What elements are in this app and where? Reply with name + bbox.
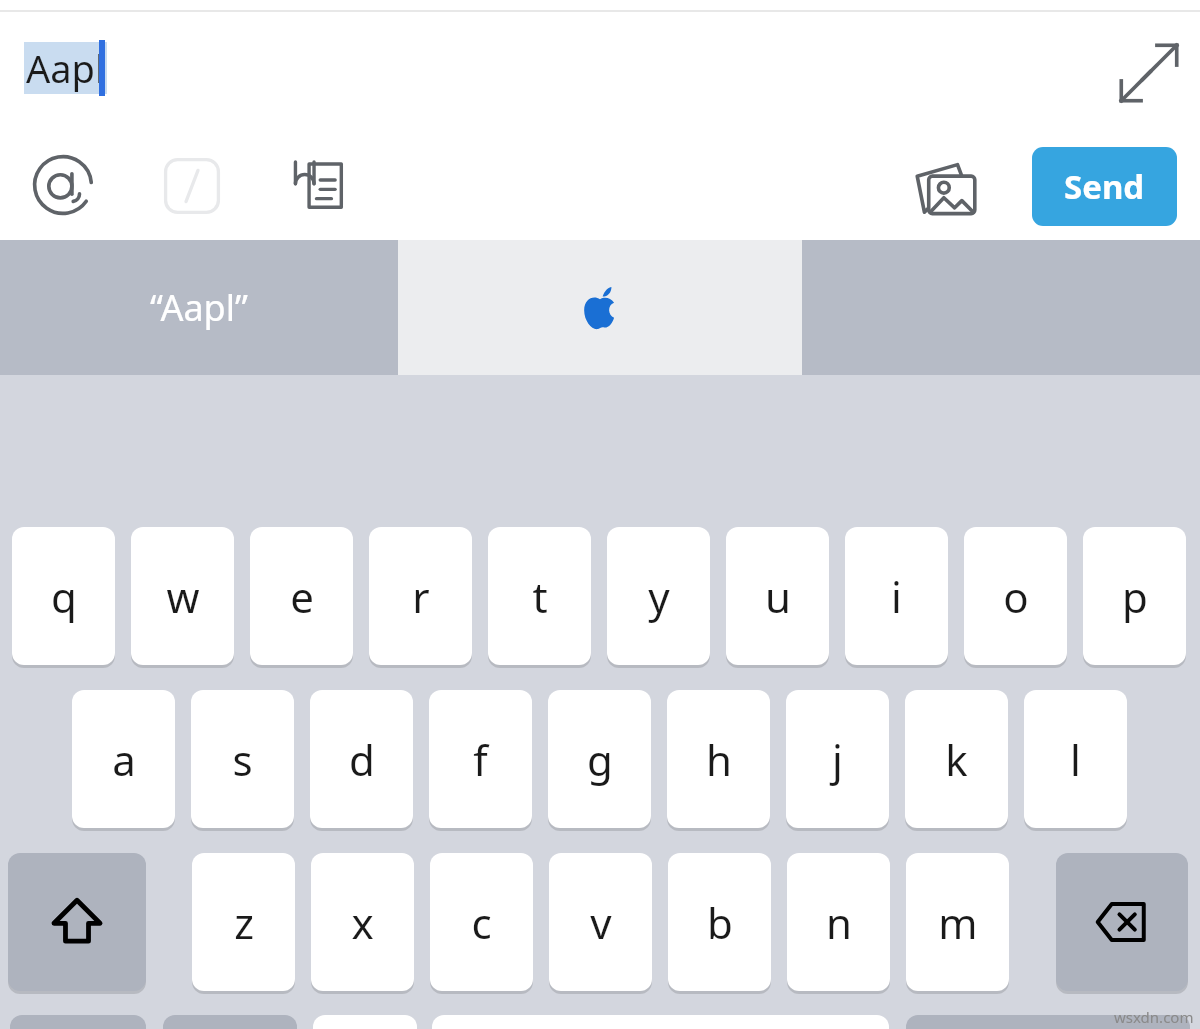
button[interactable]: j	[786, 690, 889, 828]
button[interactable]: o	[964, 527, 1067, 665]
button[interactable]: y	[607, 527, 710, 665]
staticText: i	[891, 568, 902, 625]
button[interactable]: v	[549, 853, 652, 991]
button[interactable]: d	[310, 690, 413, 828]
button[interactable]: return	[906, 1015, 1190, 1029]
staticText: f	[473, 731, 488, 788]
button[interactable]: r	[369, 527, 472, 665]
staticText: g	[587, 731, 613, 788]
staticText: d	[349, 731, 375, 788]
button[interactable]: Expand	[1116, 40, 1182, 106]
button[interactable]: s	[191, 690, 294, 828]
button[interactable]: x	[311, 853, 414, 991]
button[interactable]: Send	[1032, 147, 1177, 226]
staticText: y	[648, 568, 670, 625]
staticText: l	[1070, 731, 1081, 788]
button[interactable]: “Aapl”	[0, 240, 398, 375]
button[interactable]: 123	[10, 1015, 146, 1029]
staticText: r	[412, 568, 430, 625]
button[interactable]: l	[1024, 690, 1127, 828]
staticText: wsxdn.com	[1114, 1007, 1194, 1027]
button[interactable]: z	[192, 853, 295, 991]
staticText: j	[832, 731, 843, 788]
staticText: o	[1003, 568, 1029, 625]
button[interactable]: t	[488, 527, 591, 665]
staticText: m	[938, 894, 978, 951]
button[interactable]: Backspace	[1056, 853, 1188, 991]
button[interactable]: Emoji	[163, 1015, 297, 1029]
staticText: h	[706, 731, 732, 788]
button[interactable]: p	[1083, 527, 1186, 665]
button[interactable]: Shift	[8, 853, 146, 991]
button[interactable]: n	[787, 853, 890, 991]
staticText: Aapl	[26, 42, 105, 94]
staticText: z	[234, 894, 254, 951]
staticText: t	[532, 568, 548, 625]
button[interactable]: Aapl	[24, 40, 113, 102]
staticText: n	[826, 894, 852, 951]
button[interactable]: m	[906, 853, 1009, 991]
button[interactable]: Slash command	[162, 156, 222, 216]
staticText: v	[590, 894, 612, 951]
staticText: x	[351, 894, 374, 951]
button[interactable]: Attach file	[288, 154, 350, 216]
staticText: s	[232, 731, 253, 788]
button[interactable]: i	[845, 527, 948, 665]
button[interactable]: Photos	[910, 156, 982, 228]
staticText: q	[51, 568, 77, 625]
button[interactable]: c	[430, 853, 533, 991]
button[interactable]	[398, 240, 802, 375]
button[interactable]: b	[668, 853, 771, 991]
button[interactable]: q	[12, 527, 115, 665]
button[interactable]: f	[429, 690, 532, 828]
staticText: k	[945, 731, 968, 788]
staticText: a	[112, 731, 136, 788]
button[interactable]: u	[726, 527, 829, 665]
staticText: u	[765, 568, 791, 625]
staticText: w	[166, 568, 200, 625]
button[interactable]: h	[667, 690, 770, 828]
button[interactable]: g	[548, 690, 651, 828]
button[interactable]: e	[250, 527, 353, 665]
staticText: b	[707, 894, 733, 951]
staticText: “Aapl”	[150, 283, 248, 332]
staticText: Send	[1064, 164, 1145, 209]
button[interactable]: space	[432, 1015, 889, 1029]
button[interactable]: Mention	[30, 152, 96, 218]
button[interactable]: w	[131, 527, 234, 665]
button[interactable]: a	[72, 690, 175, 828]
staticText: e	[290, 568, 314, 625]
button[interactable]: k	[905, 690, 1008, 828]
staticText: p	[1122, 568, 1148, 625]
staticText: c	[471, 894, 492, 951]
button[interactable]: Dictate	[313, 1015, 417, 1029]
